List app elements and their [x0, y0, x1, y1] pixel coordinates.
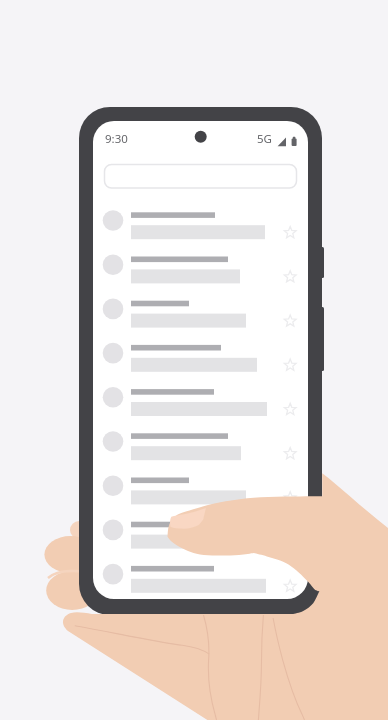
button[interactable]: Hand holding phone illustration [0, 0, 388, 720]
